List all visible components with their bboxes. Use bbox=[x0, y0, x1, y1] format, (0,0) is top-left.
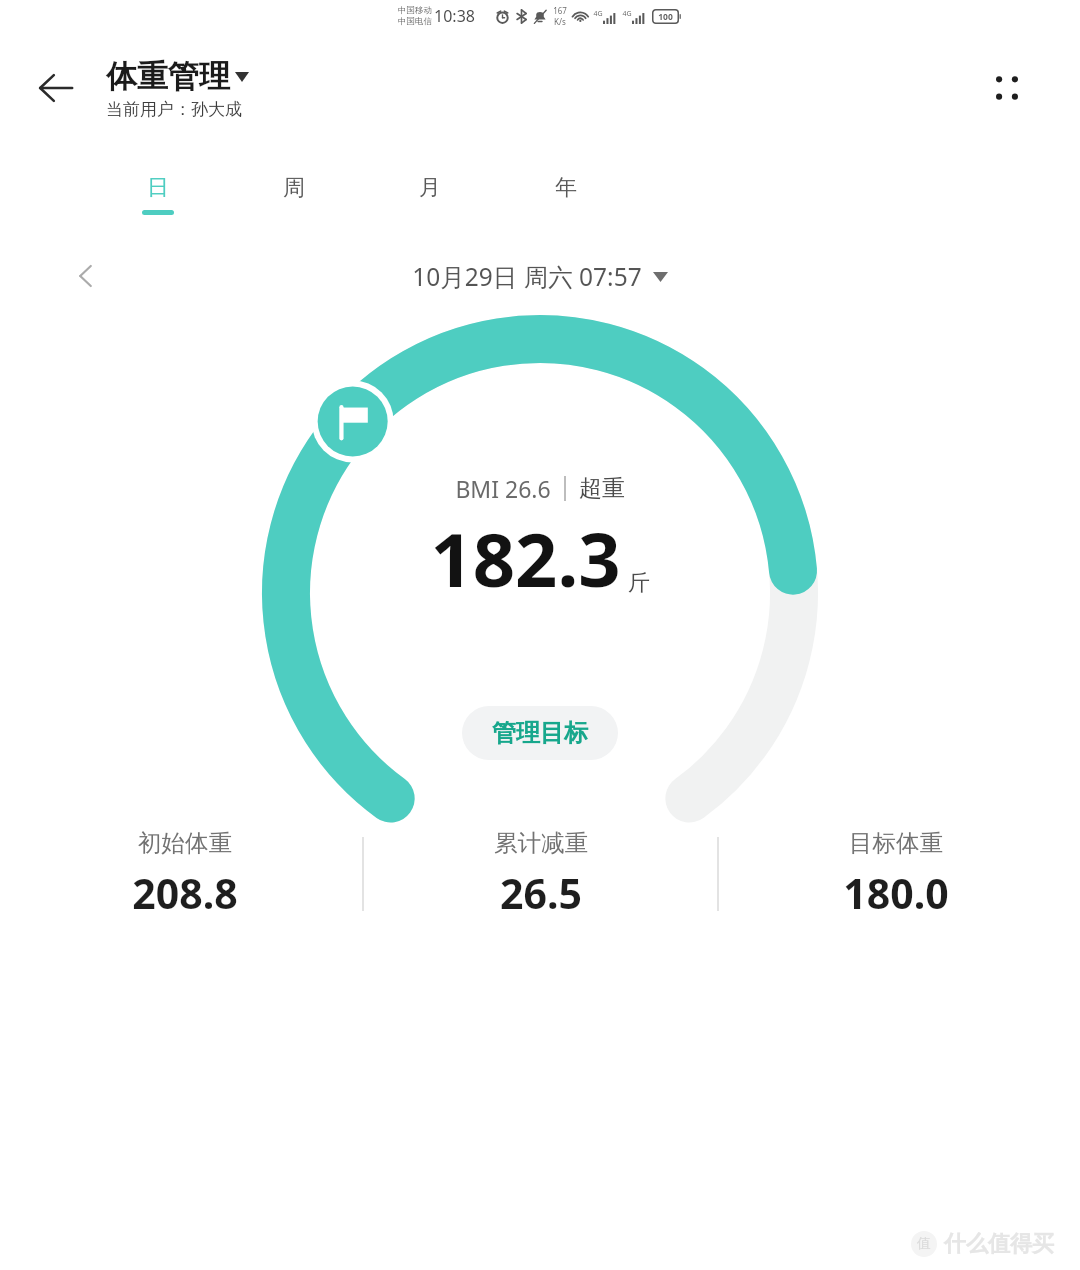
staticText: 167 bbox=[553, 5, 567, 16]
staticText: 中国电信 bbox=[398, 16, 432, 27]
button[interactable]: 年 bbox=[498, 174, 634, 215]
staticText: 周 bbox=[283, 174, 305, 202]
staticText: 100 bbox=[658, 11, 673, 23]
staticText: 208.8 bbox=[132, 865, 238, 921]
button[interactable]: 10月29日 周六 07:57 bbox=[412, 260, 668, 293]
staticText: 管理目标 bbox=[492, 718, 588, 748]
staticText: 10月29日 周六 07:57 bbox=[412, 260, 642, 293]
staticText: 当前用户：孙大成 bbox=[106, 99, 242, 120]
button[interactable]: 累计减重 bbox=[364, 828, 717, 921]
button[interactable]: Back bbox=[22, 54, 90, 122]
staticText: 4G bbox=[593, 9, 603, 19]
staticText: 目标体重 bbox=[849, 828, 943, 858]
staticText: 中国移动 bbox=[398, 5, 432, 16]
button[interactable]: 日 bbox=[90, 174, 226, 215]
button[interactable]: 初始体重 bbox=[8, 828, 362, 921]
staticText: 182.3 bbox=[430, 508, 621, 609]
button[interactable]: 周 bbox=[226, 174, 362, 215]
staticText: 4G bbox=[622, 9, 632, 19]
staticText: 月 bbox=[419, 174, 441, 202]
staticText: 累计减重 bbox=[494, 828, 588, 858]
staticText: 超重 bbox=[579, 474, 625, 503]
staticText: 什么值得买 bbox=[944, 1230, 1054, 1258]
staticText: 值 bbox=[917, 1235, 931, 1253]
staticText: 日 bbox=[147, 174, 169, 202]
staticText: 初始体重 bbox=[138, 828, 232, 858]
button[interactable]: More options bbox=[972, 53, 1042, 123]
staticText: 26.5 bbox=[500, 865, 582, 921]
button[interactable]: 目标体重 bbox=[719, 828, 1072, 921]
button[interactable]: 月 bbox=[362, 174, 498, 215]
button[interactable]: Previous day bbox=[56, 249, 116, 303]
staticText: 体重管理 bbox=[106, 57, 230, 96]
staticText: 10:38 bbox=[434, 5, 475, 27]
staticText: 斤 bbox=[628, 569, 650, 597]
staticText: 180.0 bbox=[843, 865, 949, 921]
button[interactable]: 体重管理 bbox=[106, 57, 249, 120]
staticText: BMI 26.6 bbox=[455, 473, 551, 504]
button[interactable]: 管理目标 bbox=[462, 706, 618, 760]
staticText: 年 bbox=[555, 174, 577, 202]
staticText: K/s bbox=[554, 16, 566, 27]
